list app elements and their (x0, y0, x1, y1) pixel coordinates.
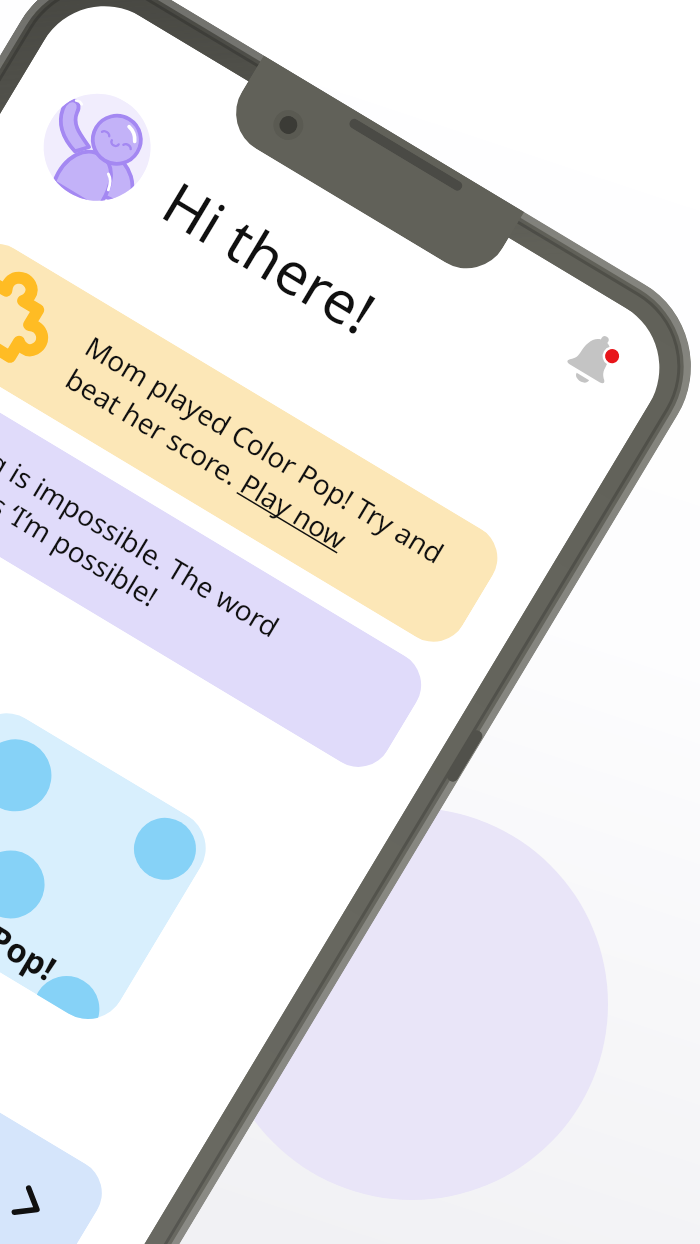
staticText: Color Pop! (0, 866, 65, 990)
button[interactable]: Profile (24, 74, 170, 221)
button[interactable]: Nothing is impossible. The word itself s… (0, 358, 434, 779)
staticText: Play now (234, 465, 355, 558)
button[interactable] (0, 872, 114, 1244)
button[interactable]: Color Pop! (0, 699, 220, 1033)
staticText: Hi there! (149, 163, 390, 351)
button[interactable]: Mom played Color Pop! Try and (0, 231, 510, 654)
button[interactable]: Notifications (553, 320, 633, 399)
staticText: Nothing is impossible. The word itself s… (0, 395, 287, 676)
staticText: beat her score. (59, 359, 253, 497)
staticText: Mom played Color Pop! Try and (79, 327, 451, 572)
